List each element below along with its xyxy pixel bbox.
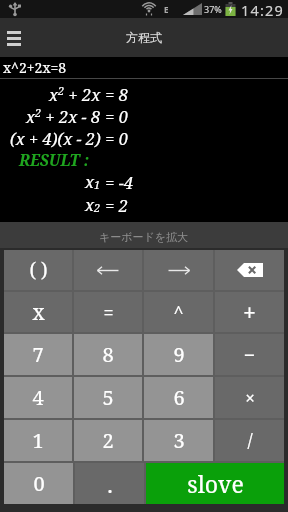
staticText: = 0 xyxy=(101,127,129,149)
staticText: 2 xyxy=(102,427,114,454)
button[interactable]: / xyxy=(215,420,284,461)
staticText: 14:29 xyxy=(241,0,285,18)
staticText: 3 xyxy=(173,427,185,454)
staticText: + xyxy=(243,298,256,327)
button[interactable]: 5 xyxy=(74,377,142,418)
button[interactable]: 1 xyxy=(4,420,72,461)
staticText: RESULT : xyxy=(19,149,90,170)
button[interactable] xyxy=(4,28,24,48)
button[interactable]: 8 xyxy=(74,334,142,375)
button[interactable]: . xyxy=(75,463,144,504)
button[interactable]: ^ xyxy=(144,292,213,332)
staticText: 37% xyxy=(204,3,222,15)
button[interactable] xyxy=(144,250,213,290)
button[interactable] xyxy=(74,250,142,290)
button[interactable]: 9 xyxy=(144,334,213,375)
staticText: = 2 xyxy=(101,194,129,216)
staticText: x2 + 2x − 8 xyxy=(26,105,101,127)
button[interactable]: 3 xyxy=(144,420,213,461)
button[interactable]: = xyxy=(74,292,142,332)
staticText: 5 xyxy=(102,384,114,411)
button[interactable]: 6 xyxy=(144,377,213,418)
staticText: キーボードを拡大 xyxy=(99,230,189,244)
button[interactable]: − xyxy=(215,334,284,375)
staticText: = −4 xyxy=(101,171,134,193)
staticText: (x + 4)(x − 2) xyxy=(10,127,101,149)
button[interactable]: ( ) xyxy=(4,250,72,290)
staticText: x1 xyxy=(85,170,101,193)
staticText: ^ xyxy=(173,300,184,325)
button[interactable]: × xyxy=(215,377,284,418)
staticText: E xyxy=(164,4,169,15)
button[interactable]: キーボードを拡大 xyxy=(0,222,288,248)
button[interactable]: 4 xyxy=(4,377,72,418)
staticText: x^2+2x=8 xyxy=(3,58,67,77)
staticText: 9 xyxy=(173,341,185,368)
staticText: x2 + 2x xyxy=(49,83,101,105)
button[interactable]: 0 xyxy=(4,463,73,504)
staticText: 6 xyxy=(173,384,185,411)
staticText: − xyxy=(244,342,255,368)
staticText: 7 xyxy=(32,341,44,368)
staticText: = 8 xyxy=(101,83,129,105)
staticText: . xyxy=(107,469,113,499)
button[interactable]: 7 xyxy=(4,334,72,375)
staticText: 8 xyxy=(102,341,114,368)
button[interactable]: + xyxy=(215,292,284,332)
button[interactable]: x xyxy=(4,292,72,332)
staticText: = xyxy=(103,300,114,325)
button[interactable]: 2 xyxy=(74,420,142,461)
staticText: 4 xyxy=(32,384,44,411)
staticText: x2 xyxy=(85,193,101,216)
button[interactable]: slove xyxy=(146,463,284,504)
staticText: 0 xyxy=(33,470,45,497)
staticText: = 0 xyxy=(101,105,129,127)
staticText: / xyxy=(247,428,253,453)
staticText: slove xyxy=(187,468,244,499)
button[interactable] xyxy=(215,250,284,290)
staticText: × xyxy=(245,387,255,409)
staticText: ( ) xyxy=(29,257,48,283)
staticText: 1 xyxy=(32,427,44,454)
staticText: x xyxy=(32,298,45,327)
staticText: 方程式 xyxy=(126,30,162,45)
